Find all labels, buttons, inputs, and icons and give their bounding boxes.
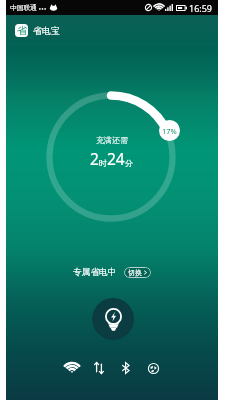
staticText: 专属省电中 <box>73 267 117 278</box>
button[interactable]: 省 <box>15 15 218 45</box>
staticText: 分 <box>125 158 133 168</box>
staticText: 时 <box>99 158 107 168</box>
staticText: 中国联通 <box>10 4 37 12</box>
button[interactable]: 切换 <box>124 267 151 278</box>
staticText: 16:59 <box>189 2 213 14</box>
button[interactable]: Wi-Fi <box>59 355 85 381</box>
staticText: 切换 <box>128 268 142 277</box>
button[interactable]: Toggle power saving <box>92 298 134 340</box>
staticText: 省 <box>17 24 27 37</box>
staticText: 17% <box>162 126 177 136</box>
button[interactable]: Mobile data <box>86 355 112 381</box>
button[interactable]: Bluetooth <box>113 355 139 381</box>
staticText: 充满还需 <box>96 135 128 145</box>
staticText: 24 <box>107 148 125 169</box>
button[interactable]: Browser <box>140 355 166 381</box>
staticText: 省电宝 <box>33 25 60 36</box>
staticText: 2 <box>90 148 99 169</box>
